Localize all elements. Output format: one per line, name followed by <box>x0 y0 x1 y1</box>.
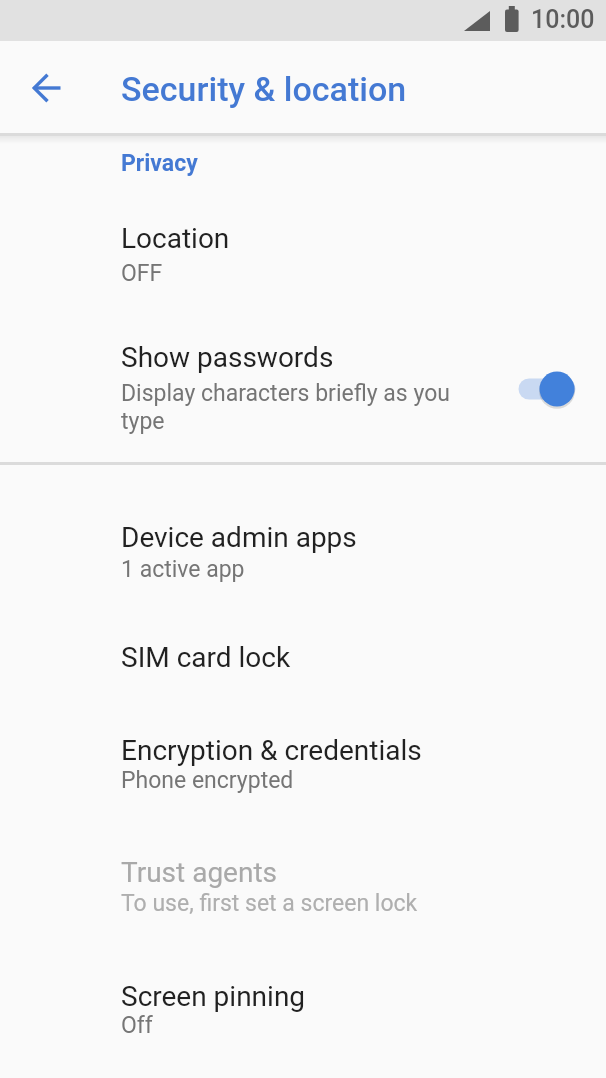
staticText: Show passwords <box>121 341 334 374</box>
button[interactable]: Device admin apps <box>0 500 606 600</box>
staticText: Phone encrypted <box>121 767 294 794</box>
button[interactable]: Trust agents <box>0 836 606 936</box>
staticText: Location <box>121 222 230 255</box>
staticText: Security & location <box>121 69 407 109</box>
staticText: Off <box>121 1012 153 1039</box>
staticText: Encryption & credentials <box>121 734 422 767</box>
button[interactable] <box>24 65 70 111</box>
button[interactable]: Screen pinning <box>0 958 606 1058</box>
staticText: To use, first set a screen lock <box>121 890 418 917</box>
button[interactable]: Location <box>0 205 606 305</box>
staticText: SIM card lock <box>121 641 291 674</box>
staticText: Trust agents <box>121 856 278 889</box>
staticText: 1 active app <box>121 556 245 583</box>
button[interactable]: Encryption & credentials <box>0 713 606 813</box>
button[interactable]: SIM card lock <box>0 625 606 695</box>
staticText: 10:00 <box>531 5 595 34</box>
staticText: OFF <box>121 260 163 287</box>
staticText: Display characters briefly as you type <box>121 380 450 435</box>
staticText: Device admin apps <box>121 521 357 554</box>
staticText: Privacy <box>121 150 198 177</box>
staticText: Screen pinning <box>121 980 306 1013</box>
button[interactable]: Show passwords <box>0 330 606 448</box>
